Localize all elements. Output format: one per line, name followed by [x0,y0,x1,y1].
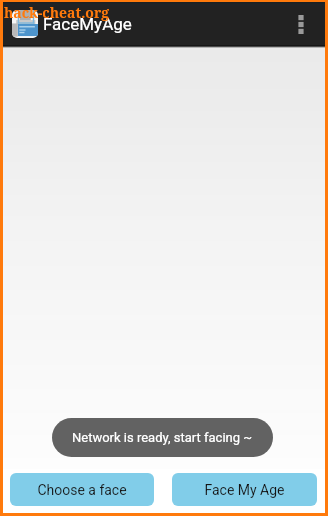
staticText: Face My Age [204,482,285,498]
button[interactable]: More options [284,7,318,41]
staticText: hack-cheat.org [4,3,110,22]
button[interactable]: Network is ready, start facing ~ [52,418,273,457]
staticText: FaceMyAge [43,14,132,34]
button[interactable]: Choose a face [10,473,154,506]
button[interactable]: FaceMyAge [3,2,138,45]
staticText: Network is ready, start facing ~ [72,430,253,445]
button[interactable]: Face My Age [172,473,317,506]
staticText: Choose a face [37,482,127,498]
